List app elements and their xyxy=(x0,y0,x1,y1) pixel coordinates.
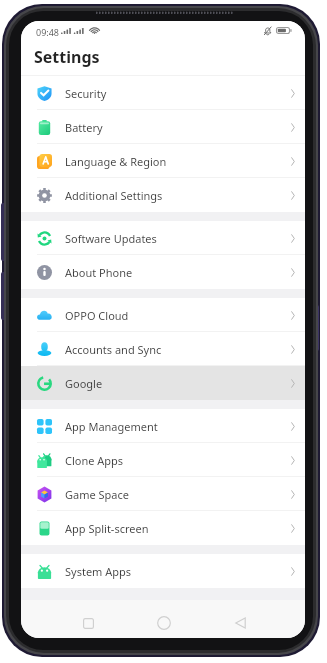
staticText: Language & Region xyxy=(65,154,167,169)
staticText: Clone Apps xyxy=(65,453,124,468)
staticText: About Phone xyxy=(65,265,133,280)
button[interactable]: About Phone xyxy=(21,255,305,289)
button[interactable]: App Split-screen xyxy=(21,511,305,545)
button[interactable]: OPPO Cloud xyxy=(21,298,305,332)
button[interactable]: Game Space xyxy=(21,477,305,511)
staticText: Additional Settings xyxy=(65,188,163,203)
button[interactable]: Accounts and Sync xyxy=(21,332,305,366)
button[interactable]: Back xyxy=(225,608,255,638)
staticText: Software Updates xyxy=(65,231,157,246)
staticText: System Apps xyxy=(65,564,132,579)
button[interactable]: System Apps xyxy=(21,554,305,588)
button[interactable]: Additional Settings xyxy=(21,178,305,212)
staticText: Settings xyxy=(34,46,100,68)
button[interactable]: App Management xyxy=(21,409,305,443)
button[interactable]: Battery xyxy=(21,110,305,144)
staticText: Battery xyxy=(65,120,103,135)
staticText: OPPO Cloud xyxy=(65,308,129,323)
button[interactable]: Software Updates xyxy=(21,221,305,255)
button[interactable]: Recents xyxy=(73,608,103,638)
button[interactable]: Language & Region xyxy=(21,144,305,178)
button[interactable]: Security xyxy=(21,76,305,110)
button[interactable]: Google xyxy=(21,366,305,400)
button[interactable]: Clone Apps xyxy=(21,443,305,477)
staticText: App Split-screen xyxy=(65,521,149,536)
staticText: Security xyxy=(65,86,107,101)
staticText: Game Space xyxy=(65,487,129,502)
staticText: Accounts and Sync xyxy=(65,342,162,357)
button[interactable]: Home xyxy=(149,608,179,638)
staticText: App Management xyxy=(65,419,158,434)
staticText: 09:48 xyxy=(36,26,60,38)
staticText: Google xyxy=(65,376,103,391)
